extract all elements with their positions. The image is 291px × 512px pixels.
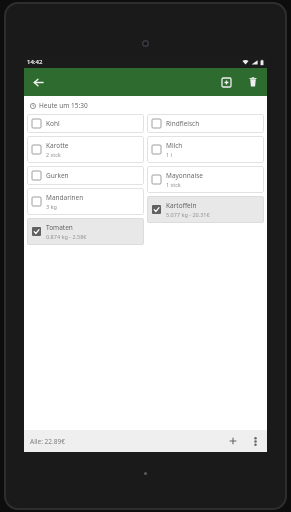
staticText: 5.077 kg - 20.31€ [166,211,210,218]
staticText: Milch [166,141,183,150]
staticText: 1 stck [166,181,181,188]
staticText: Mandarinen [46,193,84,202]
button[interactable]: More options [247,433,263,449]
button[interactable]: Mayonnaise [147,166,264,193]
staticText: 0.874 kg - 2.58€ [46,233,87,240]
staticText: 3 kg [46,203,57,210]
button[interactable]: Move items [216,72,236,92]
staticText: Karotte [46,141,69,150]
button[interactable]: Milch [147,136,264,163]
button[interactable]: Mandarinen [27,188,144,215]
staticText: 1 l [166,151,172,158]
staticText: Gurken [46,171,69,180]
button[interactable]: Add item [225,433,241,449]
button[interactable]: Karotte [27,136,144,163]
staticText: Kohl [46,119,60,128]
staticText: Tomaten [46,223,73,232]
staticText: Alle: 22.89€ [30,437,65,446]
staticText: Heute um 15:30 [39,101,88,110]
button[interactable]: Kohl [27,114,144,133]
staticText: Rindfleisch [166,119,200,128]
button[interactable]: Back [28,72,48,92]
button[interactable]: Kartoffeln [147,196,264,223]
staticText: Kartoffeln [166,201,197,210]
staticText: Mayonnaise [166,171,203,180]
staticText: 2 stck [46,151,61,158]
button[interactable]: Tomaten [27,218,144,245]
staticText: 14:42 [27,58,43,66]
button[interactable]: Rindfleisch [147,114,264,133]
button[interactable]: Gurken [27,166,144,185]
button[interactable]: Delete [243,72,263,92]
